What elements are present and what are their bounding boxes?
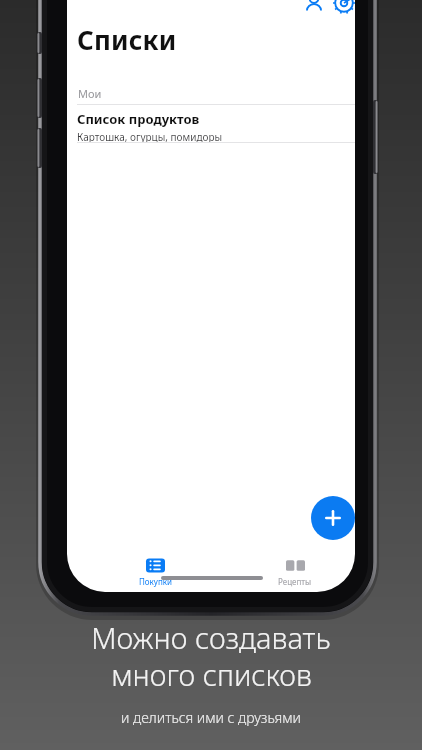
button[interactable]: Add list <box>311 496 355 540</box>
staticText: много списков <box>111 655 312 694</box>
staticText: Списки <box>77 22 177 57</box>
button[interactable]: Settings <box>333 0 355 14</box>
button[interactable]: Покупки <box>119 556 191 590</box>
staticText: Рецепты <box>278 576 312 587</box>
button[interactable]: Список продуктов <box>67 105 355 143</box>
staticText: и делиться ими с друзьями <box>121 708 301 727</box>
staticText: Покупки <box>139 576 172 587</box>
staticText: Список продуктов <box>77 110 200 128</box>
button[interactable]: Рецепты <box>259 556 331 590</box>
staticText: Мои <box>78 86 102 101</box>
staticText: Можно создавать <box>91 618 331 657</box>
button[interactable]: Profile <box>303 0 325 14</box>
staticText: Картошка, огурцы, помидоры <box>77 130 223 143</box>
